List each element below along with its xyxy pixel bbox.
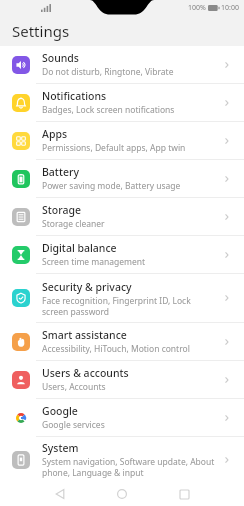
staticText: Power saving mode, Battery usage — [42, 180, 181, 192]
staticText: Smart assistance — [42, 328, 127, 342]
staticText: 10:00 — [221, 3, 239, 13]
button[interactable]: Security & privacy — [0, 274, 244, 322]
button[interactable]: Digital balance — [0, 236, 244, 273]
staticText: Google — [42, 404, 78, 418]
button[interactable]: Sounds — [0, 46, 244, 83]
staticText: Permissions, Default apps, App twin — [42, 142, 186, 154]
staticText: Face recognition, Fingerprint ID, Lock s… — [42, 295, 216, 317]
button[interactable]: System — [0, 437, 244, 482]
staticText: Digital balance — [42, 241, 117, 255]
staticText: Do not disturb, Ringtone, Vibrate — [42, 66, 174, 78]
staticText: System navigation, Software update, Abou… — [42, 456, 216, 478]
button[interactable]: Home — [110, 482, 134, 506]
staticText: Google services — [42, 419, 105, 431]
staticText: Settings — [12, 21, 70, 41]
button[interactable]: Apps — [0, 122, 244, 159]
staticText: Screen time management — [42, 256, 146, 268]
button[interactable]: Smart assistance — [0, 323, 244, 360]
button[interactable]: Recent apps — [172, 482, 196, 506]
staticText: Users & accounts — [42, 366, 129, 380]
button[interactable]: Storage — [0, 198, 244, 235]
button[interactable]: Battery — [0, 160, 244, 197]
staticText: Battery — [42, 165, 79, 179]
staticText: Security & privacy — [42, 280, 132, 294]
staticText: Notifications — [42, 89, 107, 103]
button[interactable]: Notifications — [0, 84, 244, 121]
staticText: Storage — [42, 203, 81, 217]
button[interactable]: Google — [0, 399, 244, 436]
staticText: Storage cleaner — [42, 218, 105, 230]
staticText: 100% — [188, 3, 206, 13]
staticText: Badges, Lock screen notifications — [42, 104, 175, 116]
staticText: Sounds — [42, 51, 79, 65]
staticText: Accessibility, HiTouch, Motion control — [42, 343, 190, 355]
staticText: System — [42, 441, 79, 455]
button[interactable]: Users & accounts — [0, 361, 244, 398]
staticText: Users, Accounts — [42, 381, 106, 393]
button[interactable]: Back — [48, 482, 72, 506]
staticText: Apps — [42, 127, 68, 141]
